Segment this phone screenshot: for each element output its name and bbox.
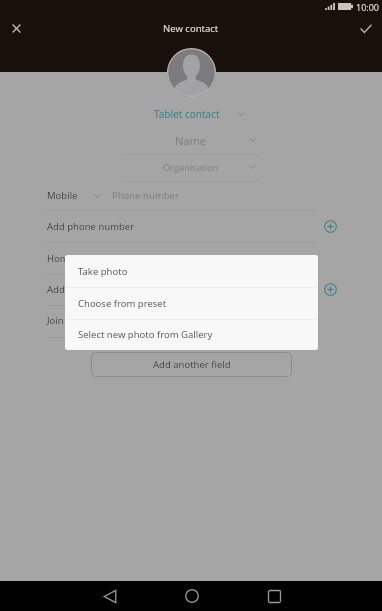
- staticText: Select new photo from Gallery: [78, 328, 213, 341]
- staticText: Choose from preset: [78, 297, 167, 310]
- button[interactable]: Select new photo from Gallery: [65, 319, 318, 350]
- staticText: Mobile: [47, 189, 78, 202]
- button[interactable]: Mobile: [47, 184, 335, 207]
- staticText: Join another account: [47, 314, 140, 327]
- staticText: Phone number: [112, 189, 179, 202]
- button[interactable]: Save: [351, 14, 380, 43]
- staticText: 10:00: [356, 1, 380, 13]
- button[interactable]: Choose from preset: [65, 287, 318, 319]
- staticText: New contact: [163, 22, 219, 35]
- button[interactable]: Tablet contact: [0, 102, 382, 126]
- button[interactable]: Recent apps: [254, 581, 294, 611]
- button[interactable]: Home: [172, 581, 212, 611]
- staticText: Email address: [109, 252, 172, 265]
- staticText: Take photo: [78, 265, 128, 278]
- staticText: Name: [175, 133, 207, 148]
- staticText: Add phone number: [47, 220, 135, 233]
- staticText: Add another field: [153, 358, 231, 371]
- staticText: Add email address: [47, 283, 130, 296]
- staticText: Tablet contact: [154, 107, 220, 121]
- button[interactable]: Close: [2, 14, 31, 43]
- staticText: Home: [47, 252, 75, 265]
- button[interactable]: Home: [47, 243, 337, 274]
- button[interactable]: Take photo: [65, 255, 318, 287]
- button[interactable]: Join another account: [47, 305, 337, 336]
- staticText: Organisation: [163, 161, 219, 173]
- button[interactable]: Change contact photo: [167, 48, 216, 97]
- button[interactable]: Add another field: [91, 352, 292, 377]
- button[interactable]: Back: [90, 581, 130, 611]
- button[interactable]: Add phone number: [47, 211, 337, 242]
- button[interactable]: Organisation: [0, 155, 382, 179]
- button[interactable]: Add email address: [47, 274, 337, 305]
